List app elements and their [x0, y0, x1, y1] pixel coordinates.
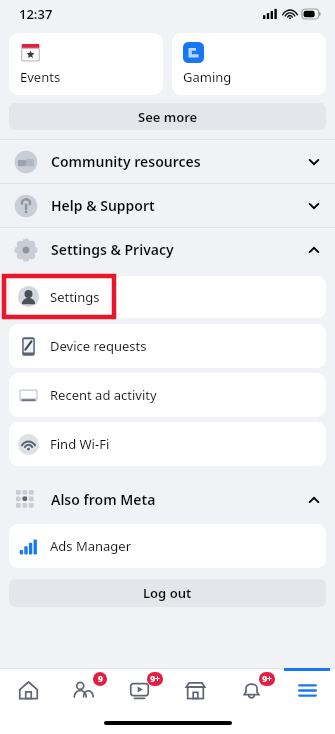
staticText: Help & Support [51, 196, 155, 215]
staticText: 9 [98, 673, 103, 685]
staticText: 12:37 [19, 5, 53, 23]
staticText: 9+ [262, 673, 272, 685]
button[interactable]: Friends [55, 668, 111, 712]
button[interactable]: Find Wi-Fi [9, 422, 326, 466]
button[interactable]: Home [0, 668, 55, 712]
button[interactable]: Gaming [172, 33, 326, 95]
button[interactable]: Settings & Privacy [0, 228, 335, 271]
button[interactable]: Community resources [0, 140, 335, 183]
button[interactable]: Marketplace [167, 668, 223, 712]
staticText: Events [20, 68, 61, 86]
button[interactable]: Ads Manager [9, 524, 326, 568]
staticText: 9+ [150, 673, 160, 685]
button[interactable]: Help & Support [0, 184, 335, 227]
staticText: Find Wi-Fi [50, 435, 110, 453]
button[interactable]: Device requests [9, 324, 326, 368]
button[interactable]: Also from Meta [0, 478, 335, 521]
button[interactable]: Video [111, 668, 167, 712]
staticText: Recent ad activity [50, 386, 157, 404]
staticText: Settings & Privacy [51, 240, 174, 259]
staticText: Ads Manager [50, 537, 132, 555]
staticText: Device requests [50, 337, 147, 355]
staticText: Gaming [183, 68, 232, 86]
button[interactable]: See more [9, 103, 326, 130]
button[interactable]: Notifications [223, 668, 279, 712]
button[interactable]: Menu [279, 668, 335, 712]
staticText: Log out [143, 584, 192, 602]
button[interactable]: Log out [9, 579, 326, 607]
staticText: Also from Meta [51, 490, 156, 509]
button[interactable]: Events [9, 33, 163, 95]
staticText: See more [138, 108, 198, 126]
button[interactable]: Settings [0, 274, 335, 319]
staticText: Settings [50, 288, 100, 306]
staticText: Community resources [51, 152, 201, 171]
button[interactable]: Recent ad activity [9, 373, 326, 417]
